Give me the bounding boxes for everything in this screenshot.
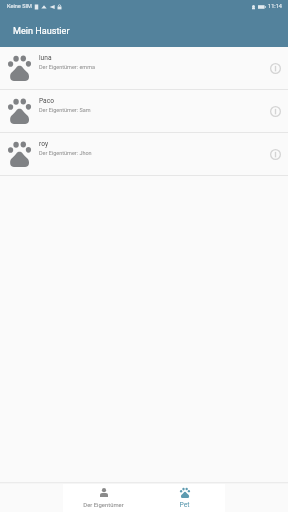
button[interactable]: Info	[267, 60, 283, 76]
staticText: 11:14	[268, 3, 282, 10]
button[interactable]: roy	[0, 133, 288, 176]
button[interactable]: Info	[267, 146, 283, 162]
staticText: Der Eigentümer	[83, 502, 124, 509]
staticText: Der Eigentümer: emma	[39, 64, 95, 70]
button[interactable]: luna	[0, 47, 288, 90]
staticText: Mein Haustier	[13, 26, 70, 37]
button[interactable]: Info	[267, 103, 283, 119]
staticText: luna	[39, 54, 52, 62]
button[interactable]: Pet	[144, 484, 225, 512]
staticText: roy	[39, 140, 49, 148]
staticText: Pet	[179, 501, 190, 509]
button[interactable]: Paco	[0, 90, 288, 133]
staticText: Paco	[39, 97, 54, 105]
button[interactable]: Der Eigentümer	[63, 484, 144, 512]
staticText: Keine SIM	[7, 3, 32, 10]
staticText: Der Eigentümer: Sam	[39, 107, 91, 113]
staticText: Der Eigentümer: Jhon	[39, 150, 92, 156]
